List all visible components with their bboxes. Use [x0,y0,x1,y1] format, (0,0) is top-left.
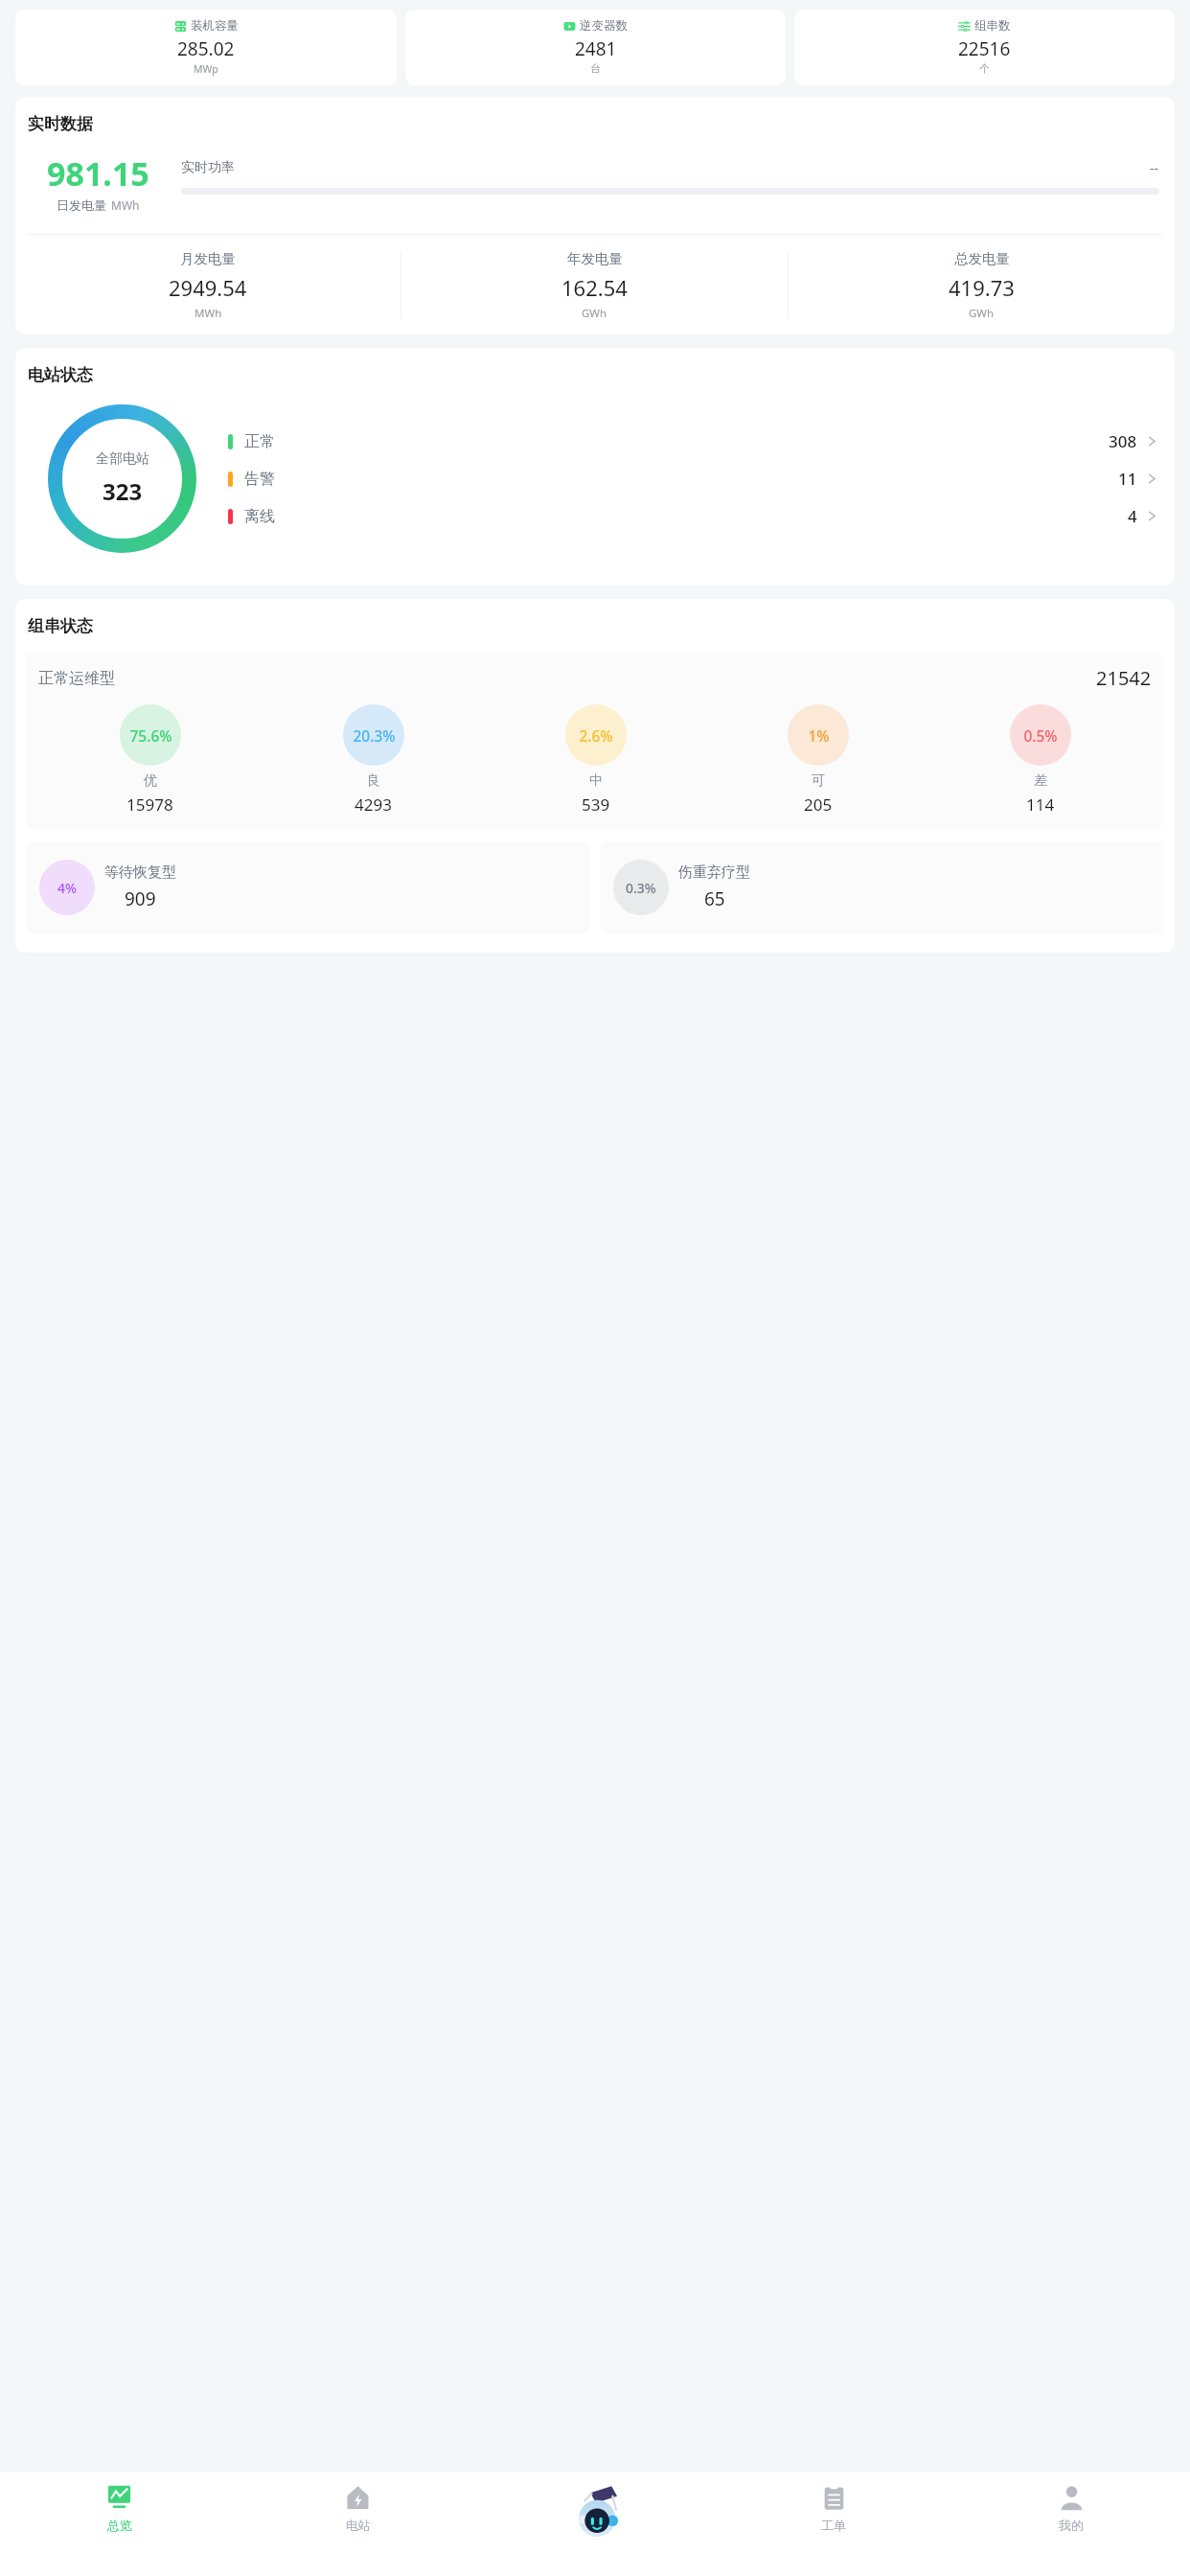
staticText: 285.02 [177,36,235,61]
staticText: 正常 [244,432,275,451]
staticText: 205 [804,793,833,816]
staticText: MWh [195,306,222,319]
staticText: 伤重弃疗型 [678,863,750,882]
staticText: 组串数 [974,18,1011,34]
staticText: 离线 [244,507,275,526]
staticText: 总发电量 [954,250,1010,267]
staticText: 可 [812,772,825,790]
button[interactable]: 4% [26,841,589,933]
staticText: 21542 [1096,665,1152,691]
button[interactable]: 逆变器数 [405,10,786,85]
button[interactable]: 装机容量 [15,10,397,85]
staticText: 0.5% [1023,725,1058,746]
staticText: 月发电量 [180,250,236,267]
staticText: 15978 [126,793,173,816]
staticText: 等待恢复型 [104,863,176,882]
staticText: 419.73 [949,273,1015,302]
staticText: 2481 [575,36,617,61]
staticText: 0.3% [626,879,656,897]
staticText: 我的 [1059,2518,1084,2533]
button[interactable]: 0.3% [600,841,1164,933]
staticText: 11 [1118,468,1137,490]
staticText: 实时功率 [181,159,235,176]
button[interactable]: 正常运维型 [26,652,1164,829]
staticText: 323 [103,475,143,507]
staticText: 65 [704,886,725,911]
staticText: 逆变器数 [580,18,628,34]
button[interactable]: 我的 [952,2484,1190,2576]
staticText: 个 [979,62,990,75]
staticText: 总览 [107,2518,132,2533]
staticText: 981.15 [47,151,149,195]
staticText: 工单 [821,2518,846,2533]
staticText: 电站状态 [28,365,93,385]
staticText: -- [1150,159,1159,177]
staticText: 中 [589,772,603,790]
staticText: 75.6% [129,725,172,746]
staticText: 告警 [244,470,275,489]
staticText: 日发电量 [57,197,106,213]
staticText: 差 [1034,772,1047,790]
staticText: 组串状态 [28,616,93,636]
button[interactable]: AI 助手 [477,2484,715,2576]
staticText: 20.3% [353,725,396,746]
staticText: 装机容量 [191,18,239,34]
button[interactable]: 电站 [239,2484,477,2576]
staticText: MWp [194,62,218,76]
staticText: 162.54 [561,273,628,302]
staticText: 4293 [355,793,392,816]
button[interactable]: 组串数 [794,10,1175,85]
staticText: 308 [1109,430,1137,452]
staticText: 全部电站 [96,450,149,468]
staticText: 电站 [346,2518,371,2533]
staticText: 良 [367,772,380,790]
staticText: 实时数据 [28,114,93,134]
staticText: GWh [582,306,607,319]
button[interactable]: 总览 [0,2484,239,2576]
staticText: GWh [969,306,995,319]
staticText: 114 [1026,793,1055,816]
staticText: 1% [808,725,830,746]
button[interactable]: 告警 [228,468,1157,490]
button[interactable]: 离线 [228,505,1157,527]
staticText: 2949.54 [169,273,247,302]
staticText: 台 [590,62,601,75]
button[interactable]: 工单 [715,2484,952,2576]
button[interactable]: 正常 [228,430,1157,452]
staticText: 909 [125,886,156,911]
staticText: 4 [1128,505,1137,527]
staticText: 539 [582,793,610,816]
staticText: MWh [111,197,140,213]
staticText: 年发电量 [567,250,623,267]
staticText: 优 [144,772,157,790]
staticText: 2.6% [579,725,613,746]
staticText: 正常运维型 [38,669,115,688]
staticText: 4% [57,879,77,897]
staticText: 22516 [958,36,1011,61]
